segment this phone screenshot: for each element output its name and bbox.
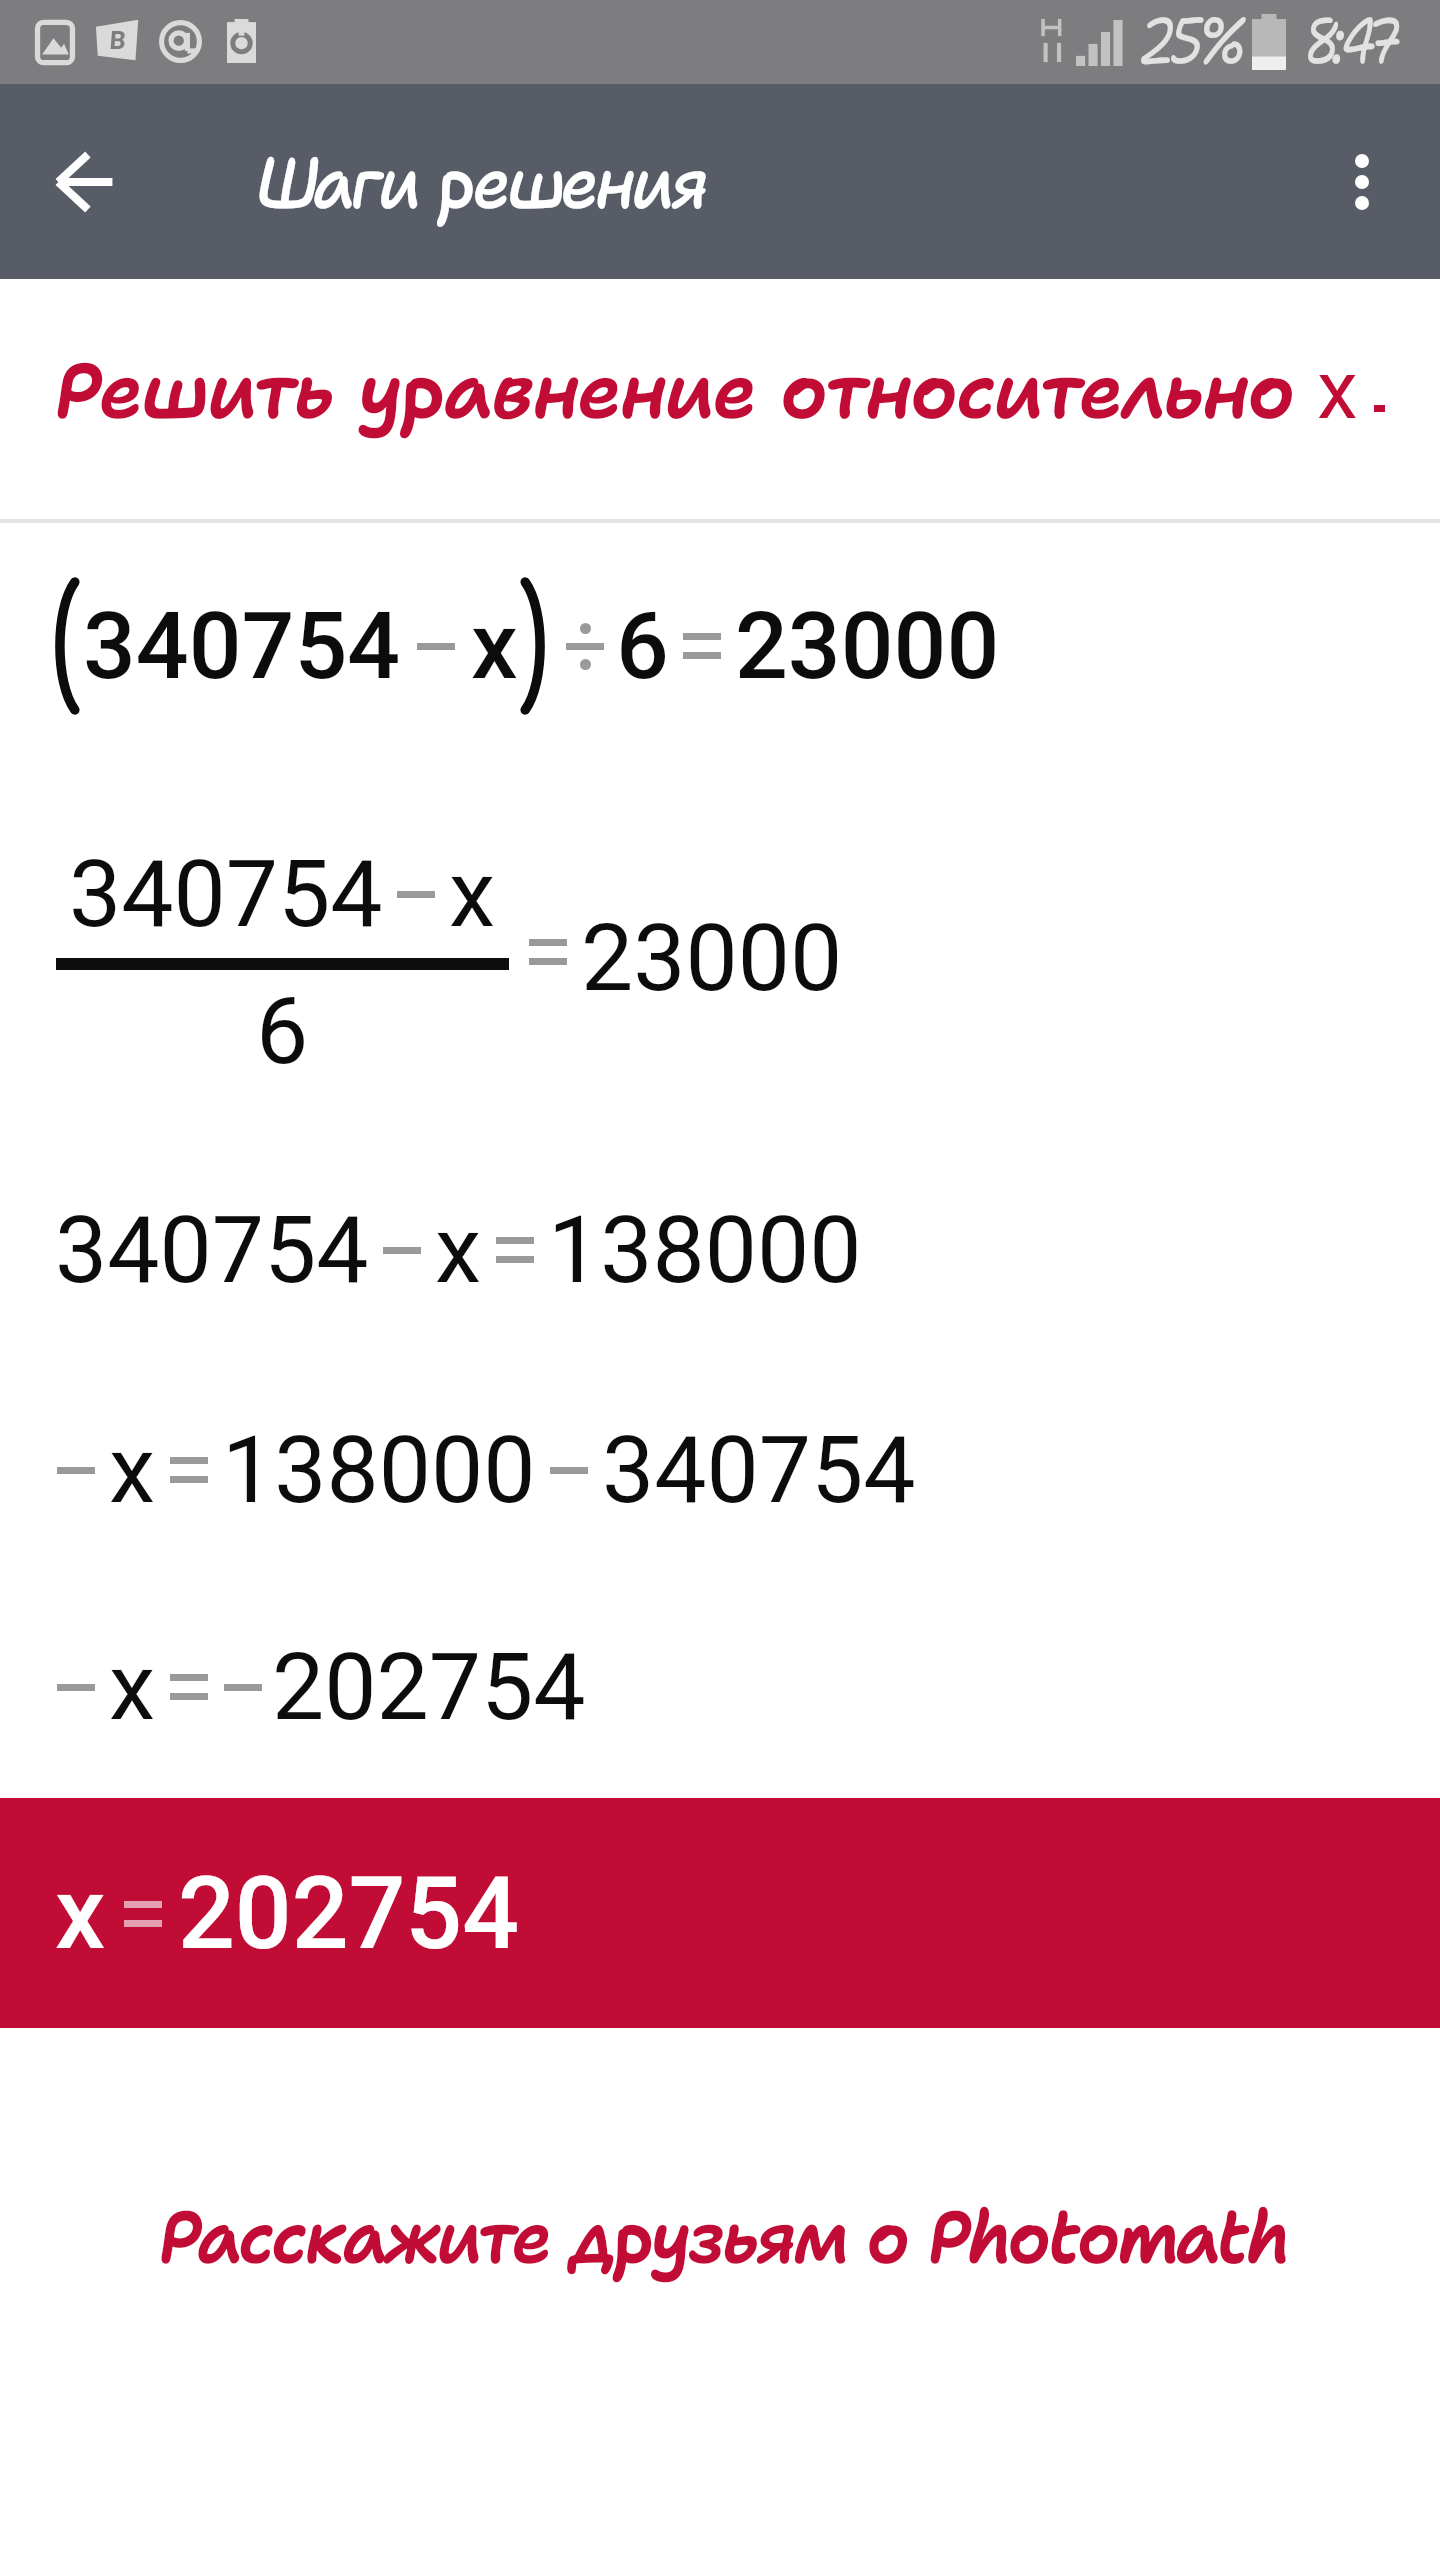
button[interactable]: x xyxy=(0,1798,1440,2028)
staticText: 138000 xyxy=(548,1196,862,1305)
staticText: 340754 xyxy=(55,1196,369,1305)
staticText: x xyxy=(109,1416,156,1525)
button[interactable]: 340754 xyxy=(0,778,1440,1108)
staticText: 6 xyxy=(616,592,669,701)
staticText: x xyxy=(109,1633,156,1742)
staticText: 138000 xyxy=(222,1416,536,1525)
staticText: x xyxy=(449,840,496,949)
button[interactable]: More options xyxy=(1298,118,1426,246)
button[interactable] xyxy=(0,2120,1440,2340)
staticText: x xyxy=(435,1196,482,1305)
staticText: x xyxy=(471,592,518,701)
button[interactable]: 340754 xyxy=(0,1108,1440,1328)
staticText: 340754 xyxy=(602,1416,916,1525)
button[interactable]: x xyxy=(0,1328,1440,1548)
button[interactable]: x xyxy=(0,1548,1440,1798)
staticText: 23000 xyxy=(735,592,1000,701)
staticText: 23000 xyxy=(581,904,843,999)
staticText: 340754 xyxy=(69,840,383,949)
button[interactable]: 340754 xyxy=(0,523,1440,778)
staticText: 202754 xyxy=(272,1633,586,1742)
staticText: 6 xyxy=(256,977,309,1086)
staticText: x xyxy=(55,1855,106,1972)
staticText: 340754 xyxy=(83,592,401,701)
button[interactable]: Back xyxy=(20,118,148,246)
staticText: 202754 xyxy=(178,1855,520,1972)
